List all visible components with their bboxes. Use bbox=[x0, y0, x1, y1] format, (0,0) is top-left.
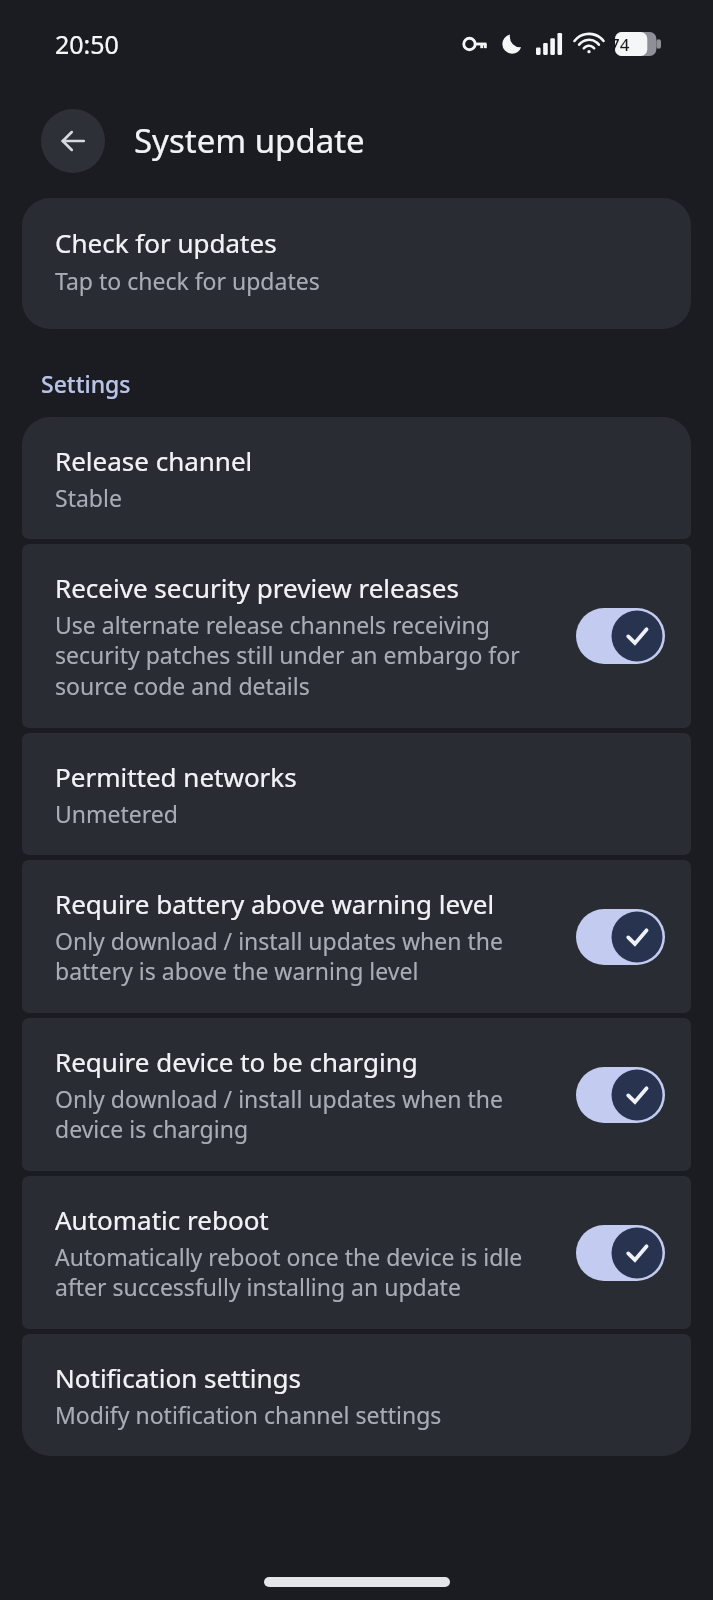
staticText: Permitted networks bbox=[55, 759, 297, 794]
staticText: Tap to check for updates bbox=[55, 265, 320, 296]
staticText: Receive security preview releases bbox=[55, 570, 459, 605]
button[interactable]: Back bbox=[41, 109, 105, 173]
staticText: Release channel bbox=[55, 443, 253, 478]
button[interactable]: Release channel bbox=[22, 417, 691, 539]
button[interactable]: Permitted networks bbox=[22, 733, 691, 855]
button[interactable]: Receive security preview releases bbox=[22, 544, 691, 728]
staticText: Check for updates bbox=[55, 225, 277, 260]
staticText: Require battery above warning level bbox=[55, 886, 495, 921]
button[interactable]: Automatic reboot bbox=[22, 1176, 691, 1329]
button[interactable]: Check for updates bbox=[22, 198, 691, 329]
staticText: Notification settings bbox=[55, 1360, 302, 1395]
button[interactable]: Toggle bbox=[576, 608, 665, 664]
staticText: Only download / install updates when the… bbox=[55, 1083, 558, 1145]
staticText: Unmetered bbox=[55, 798, 178, 829]
staticText: 74 bbox=[610, 33, 630, 56]
button[interactable]: Toggle bbox=[576, 909, 665, 965]
staticText: System update bbox=[134, 118, 365, 163]
staticText: Automatic reboot bbox=[55, 1202, 269, 1237]
staticText: Require device to be charging bbox=[55, 1044, 418, 1079]
staticText: Use alternate release channels receiving… bbox=[55, 609, 558, 702]
button[interactable]: Notification settings bbox=[22, 1334, 691, 1456]
staticText: 20:50 bbox=[55, 27, 119, 61]
button[interactable]: Require device to be charging bbox=[22, 1018, 691, 1171]
button[interactable]: Require battery above warning level bbox=[22, 860, 691, 1013]
staticText: Only download / install updates when the… bbox=[55, 925, 558, 987]
staticText: Automatically reboot once the device is … bbox=[55, 1241, 558, 1303]
staticText: Settings bbox=[41, 368, 131, 399]
staticText: Stable bbox=[55, 482, 122, 513]
button[interactable]: Toggle bbox=[576, 1225, 665, 1281]
button[interactable]: Toggle bbox=[576, 1067, 665, 1123]
staticText: Modify notification channel settings bbox=[55, 1399, 442, 1430]
